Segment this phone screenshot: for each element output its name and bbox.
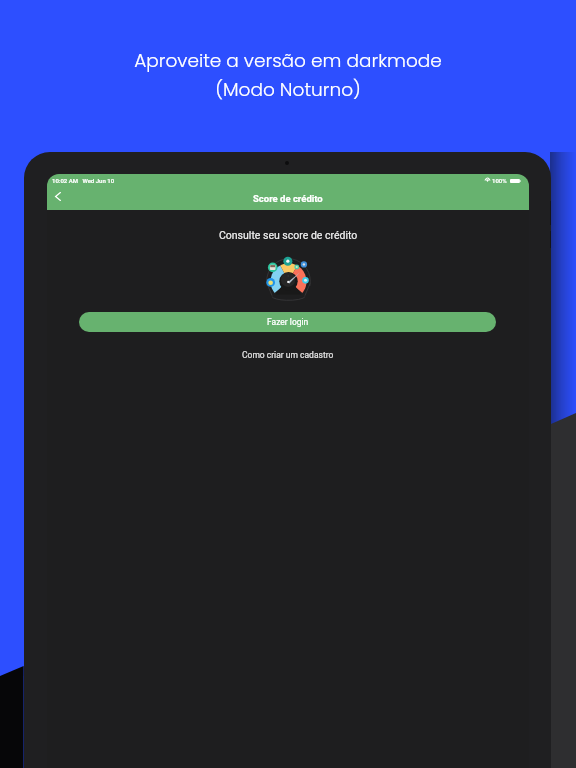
staticText: 10:02 AM Wed Jun 10 <box>52 177 115 184</box>
staticText: Como criar um cadastro <box>242 350 334 360</box>
staticText: 100% <box>492 177 507 184</box>
button[interactable]: Fazer login <box>79 312 496 332</box>
button[interactable]: Voltar <box>47 183 69 210</box>
staticText: Aproveite a versão em darkmode (Modo Not… <box>134 48 442 102</box>
staticText: Score de crédito <box>253 193 323 204</box>
staticText: Consulte seu score de crédito <box>219 229 358 241</box>
staticText: Fazer login <box>267 317 309 327</box>
button[interactable]: Como criar um cadastro <box>242 350 334 360</box>
